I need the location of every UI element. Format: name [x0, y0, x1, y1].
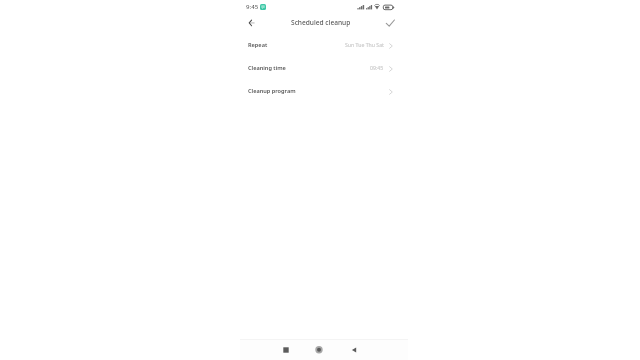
staticText: Repeat	[248, 41, 268, 49]
staticText: 9:45	[246, 2, 259, 10]
staticText: Sun Tue Thu Sat	[345, 41, 384, 48]
button[interactable]: Cleaning time	[240, 56, 408, 79]
button[interactable]: Repeat	[240, 33, 408, 56]
button[interactable]: Recent apps	[280, 344, 292, 356]
staticText: Cleanup program	[248, 87, 296, 95]
staticText: 09:45	[370, 64, 384, 71]
button[interactable]: Back	[348, 344, 360, 356]
button[interactable]: Back	[243, 16, 257, 30]
button[interactable]: Cleanup program	[240, 79, 408, 102]
button[interactable]: Home	[313, 344, 325, 356]
staticText: Scheduled cleanup	[291, 18, 351, 27]
button[interactable]: Confirm	[383, 16, 397, 30]
staticText: Cleaning time	[248, 64, 286, 72]
